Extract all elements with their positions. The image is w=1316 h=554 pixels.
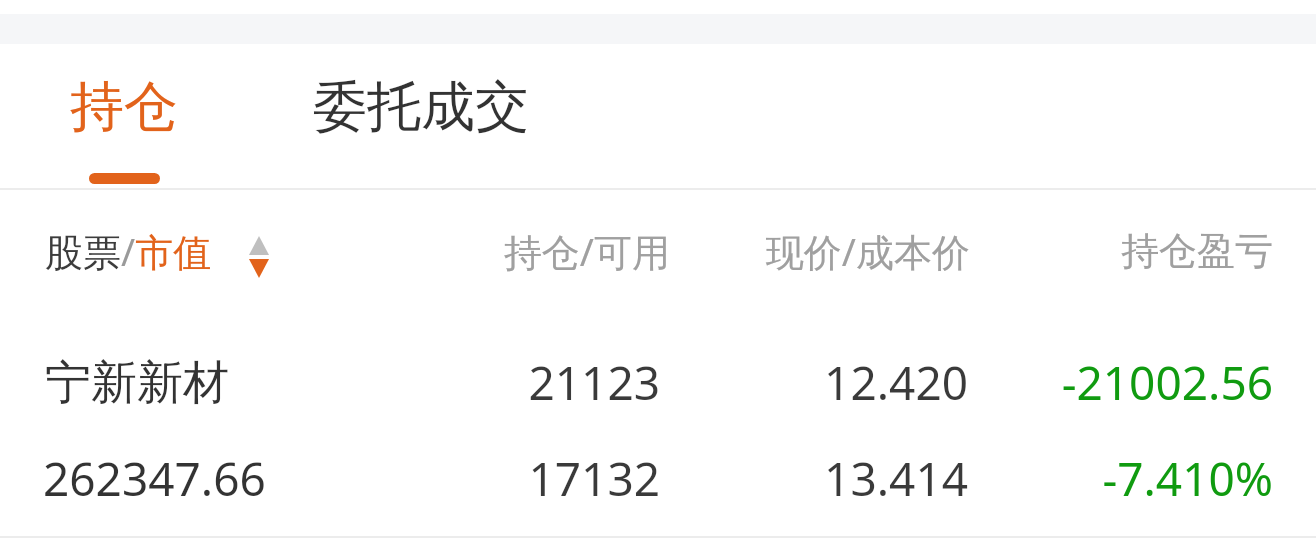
- staticText: 17132: [528, 447, 660, 510]
- staticText: 持仓盈亏: [1121, 227, 1273, 275]
- staticText: 12.420: [824, 351, 968, 414]
- button[interactable]: [0, 330, 1316, 536]
- staticText: 13.414: [824, 447, 968, 510]
- staticText: 股票/市值: [45, 225, 212, 277]
- staticText: 21123: [528, 351, 660, 414]
- button[interactable]: 委托成交: [294, 62, 548, 188]
- button[interactable]: 持仓: [44, 62, 204, 188]
- staticText: -21002.56: [1061, 351, 1273, 414]
- staticText: 持仓: [70, 73, 178, 141]
- staticText: 宁新新材: [45, 354, 229, 412]
- staticText: 委托成交: [313, 73, 529, 141]
- button[interactable]: Sort by market value descending: [246, 232, 272, 282]
- staticText: 持仓/可用: [503, 225, 670, 277]
- button[interactable]: 股票/市值: [45, 221, 212, 281]
- staticText: 现价/成本价: [765, 225, 970, 277]
- staticText: 262347.66: [43, 447, 266, 510]
- staticText: -7.410%: [1102, 447, 1273, 510]
